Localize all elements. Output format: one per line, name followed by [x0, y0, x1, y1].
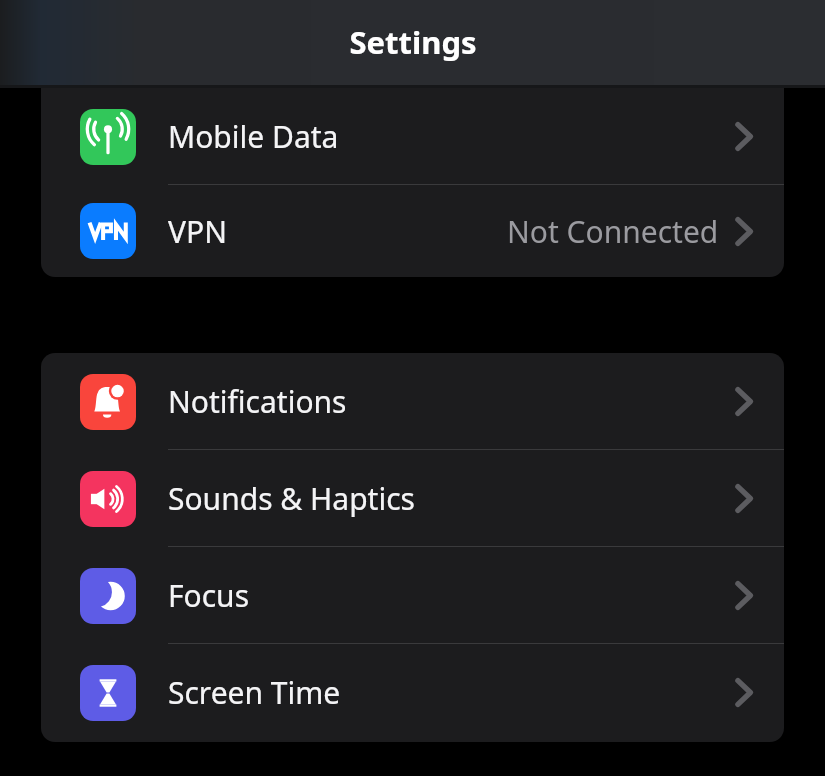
other: Sounds & Haptics	[80, 471, 136, 527]
staticText: Focus	[168, 575, 250, 616]
button[interactable]: Focus	[41, 547, 784, 644]
other: Focus	[80, 568, 136, 624]
button[interactable]: VPN	[41, 185, 784, 277]
button[interactable]: Screen Time	[41, 644, 784, 741]
staticText: Settings	[349, 21, 477, 63]
button[interactable]: Sounds & Haptics	[41, 450, 784, 547]
other: Screen Time	[80, 665, 136, 721]
button[interactable]: Mobile Data	[41, 88, 784, 185]
button[interactable]: Notifications	[41, 353, 784, 450]
other: Mobile Data	[80, 109, 136, 165]
staticText: VPN	[168, 211, 227, 252]
staticText: Not Connected	[507, 211, 719, 252]
other: Notifications	[80, 374, 136, 430]
other: VPN	[80, 203, 136, 259]
staticText: Sounds & Haptics	[168, 478, 415, 519]
staticText: Screen Time	[168, 672, 341, 713]
staticText: Notifications	[168, 381, 347, 422]
staticText: Mobile Data	[168, 116, 339, 157]
